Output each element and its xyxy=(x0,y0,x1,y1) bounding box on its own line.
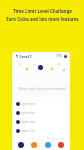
button[interactable]: Settings xyxy=(64,55,67,58)
button[interactable]: Reset xyxy=(58,142,64,148)
button[interactable]: Back xyxy=(15,54,19,58)
button[interactable]: Home xyxy=(18,142,24,148)
button[interactable]: option text xyxy=(15,100,67,108)
button[interactable]: Share xyxy=(45,142,51,148)
button[interactable]: option text xyxy=(15,109,67,117)
staticText: option text xyxy=(21,120,35,124)
staticText: Earn Coins and lots more features xyxy=(6,16,79,22)
button[interactable]: Coins xyxy=(31,142,37,148)
staticText: option text xyxy=(21,111,35,115)
staticText: Time Limit Level Challange xyxy=(13,8,72,14)
staticText: option text xyxy=(21,129,35,133)
button[interactable]: option text xyxy=(15,127,67,135)
button[interactable]: option text xyxy=(15,118,67,126)
staticText: option text xyxy=(21,102,35,106)
staticText: Level 1 xyxy=(20,54,32,59)
staticText: 1/10 xyxy=(56,54,63,58)
staticText: Which one is the correct answer? xyxy=(19,87,67,91)
